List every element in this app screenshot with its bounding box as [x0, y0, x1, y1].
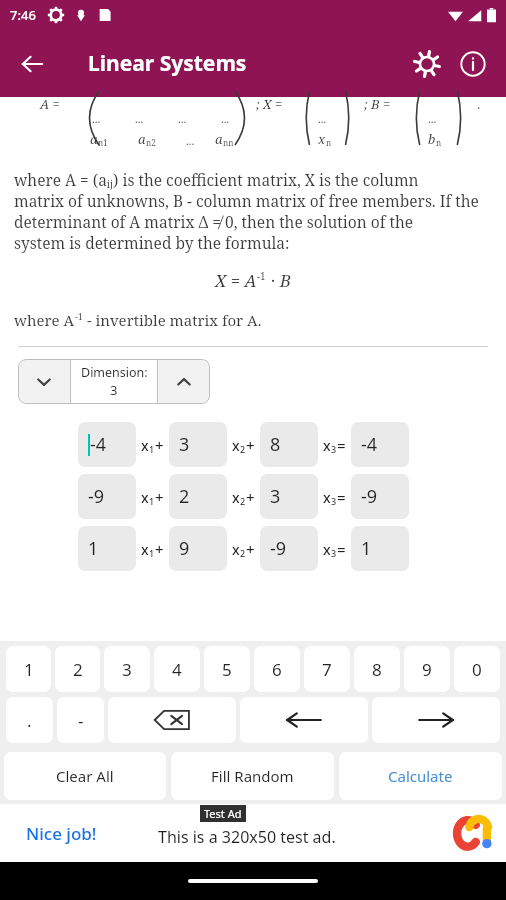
- button[interactable]: Info: [450, 41, 496, 87]
- staticText: -9: [361, 484, 378, 509]
- staticText: where A = (aᵢⱼ) is the coefficient matri…: [14, 169, 419, 190]
- staticText: n1: [98, 137, 108, 148]
- button[interactable]: Move right: [372, 697, 500, 743]
- button[interactable]: -9: [260, 526, 318, 571]
- button[interactable]: -4: [351, 422, 409, 467]
- staticText: x: [323, 488, 331, 507]
- staticText: ...: [428, 111, 437, 126]
- staticText: 3: [270, 484, 281, 509]
- button[interactable]: 1: [351, 526, 409, 571]
- button[interactable]: 3: [169, 422, 227, 467]
- staticText: a: [138, 130, 146, 148]
- staticText: 7: [322, 658, 332, 681]
- staticText: ...: [221, 111, 230, 126]
- button[interactable]: 4: [154, 646, 200, 692]
- button[interactable]: 3: [104, 646, 150, 692]
- staticText: 3: [179, 432, 190, 457]
- staticText: x: [141, 540, 149, 559]
- staticText: Calculate: [388, 766, 453, 786]
- button[interactable]: Clear All: [4, 752, 166, 800]
- staticText: x: [141, 488, 149, 507]
- staticText: x: [232, 436, 240, 455]
- staticText: -4: [90, 432, 107, 457]
- staticText: matrix of unknowns, B - column matrix of…: [14, 190, 479, 211]
- button[interactable]: Increase dimension: [158, 359, 210, 404]
- staticText: +: [246, 539, 255, 559]
- button[interactable]: 6: [254, 646, 300, 692]
- staticText: ; X =: [256, 95, 283, 113]
- staticText: 1: [24, 658, 34, 681]
- staticText: x: [318, 130, 326, 148]
- staticText: -1: [257, 269, 266, 283]
- staticText: 8: [270, 432, 281, 457]
- button[interactable]: 3: [260, 474, 318, 519]
- button[interactable]: Back: [8, 40, 56, 88]
- button[interactable]: Nice job!: [0, 804, 506, 862]
- staticText: +: [155, 487, 164, 507]
- staticText: x: [232, 540, 240, 559]
- button[interactable]: Settings: [404, 41, 450, 87]
- staticText: x: [141, 436, 149, 455]
- staticText: 3: [110, 381, 118, 399]
- staticText: .: [477, 95, 481, 113]
- staticText: 1: [149, 443, 155, 455]
- staticText: 2: [240, 547, 246, 559]
- button[interactable]: Move left: [240, 697, 368, 743]
- staticText: nn: [223, 137, 234, 148]
- staticText: 9: [179, 536, 190, 561]
- staticText: -9: [270, 536, 287, 561]
- button[interactable]: -4: [78, 422, 136, 467]
- button[interactable]: 5: [204, 646, 250, 692]
- button[interactable]: 1: [78, 526, 136, 571]
- button[interactable]: -9: [351, 474, 409, 519]
- staticText: x: [323, 436, 331, 455]
- staticText: 0: [472, 658, 482, 681]
- staticText: ...: [178, 111, 187, 126]
- button[interactable]: 2: [169, 474, 227, 519]
- staticText: Linear Systems: [88, 49, 247, 78]
- staticText: ...: [186, 133, 195, 148]
- button[interactable]: 9: [404, 646, 450, 692]
- staticText: 3: [331, 495, 337, 507]
- staticText: n: [436, 137, 442, 148]
- staticText: +: [155, 539, 164, 559]
- staticText: 1: [149, 495, 155, 507]
- staticText: a: [215, 130, 223, 148]
- staticText: This is a 320x50 test ad.: [158, 826, 336, 848]
- staticText: 6: [272, 658, 282, 681]
- staticText: system is determined by the formula:: [14, 232, 290, 253]
- button[interactable]: -: [57, 697, 104, 743]
- staticText: 5: [222, 658, 232, 681]
- button[interactable]: Backspace: [108, 697, 236, 743]
- staticText: 2: [73, 658, 83, 681]
- staticText: ...: [92, 111, 101, 126]
- staticText: +: [246, 435, 255, 455]
- staticText: A =: [40, 95, 60, 113]
- button[interactable]: Decrease dimension: [18, 359, 70, 404]
- button[interactable]: .: [6, 697, 53, 743]
- staticText: 2: [179, 484, 190, 509]
- button[interactable]: Fill Random: [171, 752, 334, 800]
- staticText: -1: [75, 310, 83, 322]
- staticText: ...: [318, 111, 327, 126]
- button[interactable]: 1: [6, 646, 51, 692]
- button[interactable]: 7: [304, 646, 350, 692]
- staticText: ; B =: [364, 95, 391, 113]
- staticText: Fill Random: [211, 766, 294, 786]
- button[interactable]: 8: [354, 646, 400, 692]
- staticText: b: [428, 130, 436, 148]
- button[interactable]: 0: [454, 646, 500, 692]
- staticText: Dimension:: [81, 364, 148, 381]
- button[interactable]: -9: [78, 474, 136, 519]
- button[interactable]: 9: [169, 526, 227, 571]
- staticText: n2: [146, 137, 156, 148]
- staticText: 8: [372, 658, 382, 681]
- button[interactable]: 2: [55, 646, 100, 692]
- button[interactable]: 8: [260, 422, 318, 467]
- staticText: 7:46: [10, 6, 36, 24]
- staticText: .: [27, 709, 32, 732]
- staticText: -: [78, 709, 84, 732]
- staticText: -4: [361, 432, 378, 457]
- staticText: 3: [331, 547, 337, 559]
- button[interactable]: Calculate: [339, 752, 502, 800]
